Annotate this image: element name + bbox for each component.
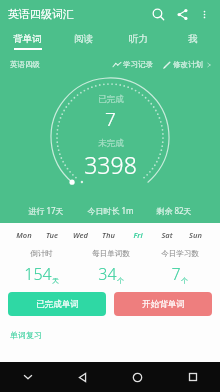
staticText: 我 bbox=[188, 33, 198, 45]
staticText: 3398 bbox=[84, 149, 137, 180]
button[interactable]: 学习记录 bbox=[113, 60, 153, 69]
staticText: 修改计划 bbox=[173, 60, 203, 69]
staticText: 已完成 bbox=[98, 94, 124, 105]
button[interactable]: 修改计划 bbox=[163, 60, 212, 69]
staticText: 7 bbox=[171, 263, 181, 285]
staticText: 背单词 bbox=[13, 33, 42, 45]
staticText: 天 bbox=[52, 276, 59, 285]
staticText: 学习记录 bbox=[123, 60, 153, 69]
button[interactable]: Home bbox=[110, 362, 165, 392]
button[interactable]: Back bbox=[55, 362, 110, 392]
staticText: Sat bbox=[161, 230, 173, 240]
staticText: 单词复习 bbox=[10, 330, 42, 340]
staticText: Sun bbox=[189, 230, 202, 240]
button[interactable]: Recents bbox=[165, 362, 220, 392]
staticText: 倒计时 bbox=[30, 249, 53, 258]
button[interactable]: Share bbox=[170, 2, 194, 26]
staticText: 英语四级词汇 bbox=[8, 7, 74, 21]
button[interactable]: 开始背单词 bbox=[114, 292, 212, 316]
button[interactable]: Search bbox=[146, 2, 170, 26]
button[interactable]: 阅读 bbox=[55, 28, 110, 54]
staticText: 听力 bbox=[129, 33, 148, 45]
staticText: 已完成单词 bbox=[36, 299, 79, 310]
staticText: 7 bbox=[105, 106, 116, 132]
staticText: Tue bbox=[46, 230, 58, 240]
staticText: 个 bbox=[117, 276, 124, 285]
staticText: 英语四级 bbox=[10, 60, 40, 69]
button[interactable]: 我 bbox=[165, 28, 220, 54]
staticText: Mon bbox=[16, 230, 32, 240]
staticText: Thu bbox=[102, 230, 115, 240]
staticText: 阅读 bbox=[74, 33, 93, 45]
staticText: Fri bbox=[133, 230, 143, 240]
staticText: 开始背单词 bbox=[142, 299, 185, 310]
button[interactable]: 单词复习 bbox=[0, 328, 220, 342]
staticText: 剩余 82天 bbox=[156, 205, 192, 216]
staticText: 今日学习数 bbox=[161, 249, 199, 258]
staticText: 未完成 bbox=[98, 138, 124, 149]
staticText: 34 bbox=[98, 263, 117, 285]
staticText: 今日时长 1m bbox=[87, 205, 134, 216]
staticText: 154 bbox=[24, 263, 52, 285]
button[interactable]: 听力 bbox=[110, 28, 165, 54]
staticText: 个 bbox=[181, 276, 188, 285]
staticText: Wed bbox=[73, 230, 88, 240]
button[interactable]: Hide bbox=[0, 362, 55, 392]
button[interactable]: More options bbox=[194, 4, 214, 24]
button[interactable]: 背单词 bbox=[0, 28, 55, 54]
button[interactable]: 已完成单词 bbox=[8, 292, 106, 316]
staticText: 每日单词数 bbox=[92, 249, 130, 258]
staticText: 进行 17天 bbox=[28, 205, 64, 216]
